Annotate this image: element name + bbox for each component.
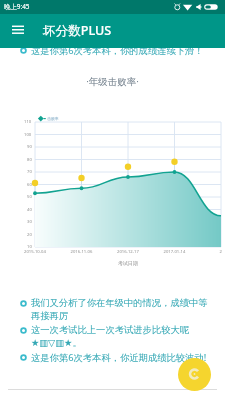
staticText: 这是你第6次考本科，你的成绩连续下滑！ <box>31 44 204 57</box>
button[interactable]: Menu <box>6 18 30 42</box>
button[interactable]: 这是你第6次考本科，你的成绩连续下滑！ <box>0 44 225 57</box>
staticText: ·年级击败率· <box>0 75 225 88</box>
staticText: 坏分数PLUS <box>43 22 112 39</box>
staticText: 晚上9:45 <box>4 2 30 11</box>
staticText: 这一次考试比上一次考试进步比较大呢★▥▽▥★。 <box>31 324 214 349</box>
button[interactable]: 这是你第6次考本科，你近期成绩比较波动! <box>0 351 225 364</box>
staticText: 我们又分析了你在年级中的情况，成绩中等再接再厉 <box>31 297 214 321</box>
button[interactable]: 这一次考试比上一次考试进步比较大呢★▥▽▥★。 <box>0 324 225 349</box>
button[interactable]: Refresh <box>178 358 211 391</box>
button[interactable]: 我们又分析了你在年级中的情况，成绩中等再接再厉 <box>0 297 225 321</box>
staticText: 这是你第6次考本科，你近期成绩比较波动! <box>31 351 207 364</box>
